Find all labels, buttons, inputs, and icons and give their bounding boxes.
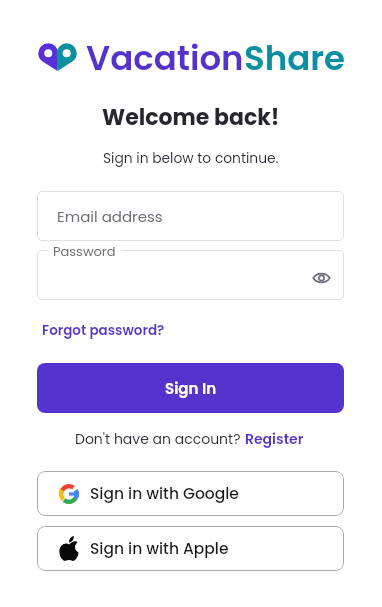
button[interactable] [37, 250, 344, 300]
staticText: Don't have an account? [75, 429, 241, 449]
staticText: Welcome back! [102, 102, 280, 133]
staticText: Forgot password? [42, 321, 165, 340]
button[interactable]: Email address [37, 191, 344, 241]
staticText: Email address [57, 206, 163, 227]
button[interactable]: Register [241, 427, 308, 451]
button[interactable]: Sign in with Google [37, 471, 344, 516]
staticText: Password [53, 242, 116, 260]
button[interactable]: Show password [308, 265, 334, 291]
staticText: Sign in with Google [90, 483, 239, 505]
button[interactable]: Forgot password? [38, 318, 169, 343]
staticText: Share [244, 34, 345, 82]
staticText: Sign in with Apple [90, 538, 229, 560]
button[interactable]: Sign In [37, 363, 344, 413]
staticText: Vacation [86, 34, 244, 82]
staticText: Sign in below to continue. [103, 149, 279, 168]
button[interactable]: Sign in with Apple [37, 526, 344, 571]
staticText: Sign In [165, 378, 217, 399]
staticText: Register [245, 429, 304, 449]
